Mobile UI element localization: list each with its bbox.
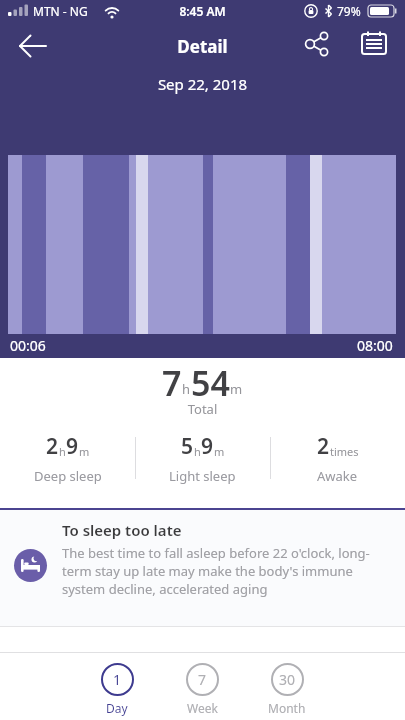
staticText: 30: [279, 670, 296, 689]
staticText: m: [230, 380, 243, 398]
staticText: 9: [66, 432, 79, 461]
button[interactable]: [9, 22, 57, 70]
staticText: h: [182, 380, 191, 398]
button[interactable]: [296, 22, 340, 66]
button[interactable]: [352, 22, 396, 66]
staticText: Light sleep: [169, 467, 236, 485]
staticText: 7: [162, 360, 182, 402]
staticText: 00:06: [10, 336, 46, 355]
staticText: 5: [181, 432, 194, 461]
button[interactable]: To sleep too late: [0, 510, 405, 626]
staticText: 7: [198, 670, 207, 689]
staticText: Sep 22, 2018: [0, 74, 405, 94]
button[interactable]: 1: [87, 663, 147, 716]
staticText: m: [214, 444, 225, 459]
staticText: The best time to fall asleep before 22 o…: [62, 544, 370, 598]
button[interactable]: 30: [257, 663, 317, 716]
staticText: 54: [191, 360, 230, 402]
staticText: 79%: [337, 3, 361, 19]
staticText: h: [59, 444, 66, 459]
staticText: Week: [187, 700, 218, 716]
staticText: 2: [46, 432, 59, 461]
staticText: Detail: [0, 35, 405, 58]
staticText: Total: [0, 400, 405, 418]
staticText: MTN - NG: [33, 3, 88, 19]
staticText: 8:45 AM: [0, 3, 405, 19]
staticText: 1: [113, 670, 122, 689]
staticText: Month: [268, 700, 306, 716]
staticText: times: [330, 444, 359, 459]
staticText: 9: [201, 432, 214, 461]
staticText: To sleep too late: [62, 520, 182, 540]
staticText: 2: [317, 432, 330, 461]
button[interactable]: 7: [172, 663, 232, 716]
staticText: h: [194, 444, 201, 459]
staticText: Day: [106, 700, 128, 716]
staticText: 08:00: [357, 336, 393, 355]
staticText: Awake: [317, 467, 358, 485]
staticText: Deep sleep: [34, 467, 102, 485]
staticText: m: [79, 444, 90, 459]
